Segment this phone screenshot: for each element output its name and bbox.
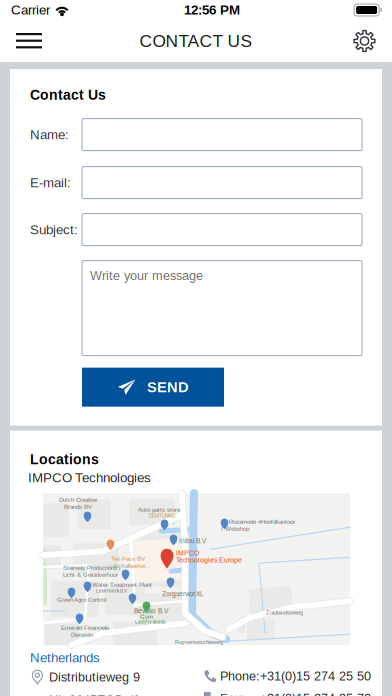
staticText: Lady's Fitness xyxy=(135,619,165,625)
staticText: DEMTUNING xyxy=(149,513,176,519)
button[interactable]: SEND xyxy=(82,368,224,407)
staticText: Teo Pace BV xyxy=(111,555,145,562)
staticText: Fax: xyxy=(220,691,245,696)
staticText: IMPCO Technologies xyxy=(28,470,151,485)
staticText: 12:56 PM xyxy=(184,3,240,17)
staticText: Zuideindseweg xyxy=(266,609,303,616)
staticText: Carrier xyxy=(11,3,50,17)
staticText: +31(0)15 274 25 50 xyxy=(260,669,371,683)
staticText: ZorgserviceXL xyxy=(162,590,204,598)
staticText: Technologies Europe xyxy=(176,556,242,564)
staticText: Write your message xyxy=(90,269,203,283)
staticText: Green Agro Control xyxy=(57,596,106,603)
staticText: Auto parts store xyxy=(138,506,180,513)
staticText: Initial B.V xyxy=(179,537,206,545)
staticText: +31(0)15 274 25 70 xyxy=(260,691,371,696)
staticText: Emerald Financiele xyxy=(61,624,109,631)
staticText: Rozamode #Hoofdkantoor xyxy=(229,518,295,525)
staticText: Netherlands xyxy=(30,650,100,665)
staticText: SEND xyxy=(147,379,189,395)
staticText: Gym xyxy=(140,613,153,620)
staticText: Distributieweg 9 xyxy=(49,670,140,684)
staticText: Stairway Productions | xyxy=(63,564,121,571)
staticText: Licht & Geluidverhuur xyxy=(63,571,118,578)
staticText: Subject: xyxy=(30,222,78,237)
staticText: Bevako B.V xyxy=(134,607,168,615)
staticText: Name: xyxy=(30,127,69,142)
staticText: Leverbeck B.V xyxy=(96,588,127,594)
staticText: NL-2645EGDelfgauw xyxy=(49,693,168,696)
staticText: IMPCO xyxy=(176,549,199,557)
staticText: Diensten xyxy=(71,631,93,638)
staticText: E-mail: xyxy=(30,175,71,190)
staticText: Brands BV xyxy=(64,503,92,510)
staticText: / Webshop xyxy=(221,525,249,532)
staticText: Contact Us xyxy=(30,87,106,103)
staticText: CONTACT US xyxy=(139,31,252,51)
staticText: Phone: xyxy=(220,669,260,683)
staticText: Dutch Creative xyxy=(59,496,97,503)
staticText: Ruyvenseschieweg xyxy=(175,639,223,645)
button[interactable]: Menu xyxy=(0,20,70,62)
button[interactable]: Settings xyxy=(322,20,392,62)
staticText: / de Italiaanse... xyxy=(109,562,151,569)
staticText: Locations xyxy=(30,452,99,467)
staticText: Water Treatment Plant xyxy=(92,581,152,588)
